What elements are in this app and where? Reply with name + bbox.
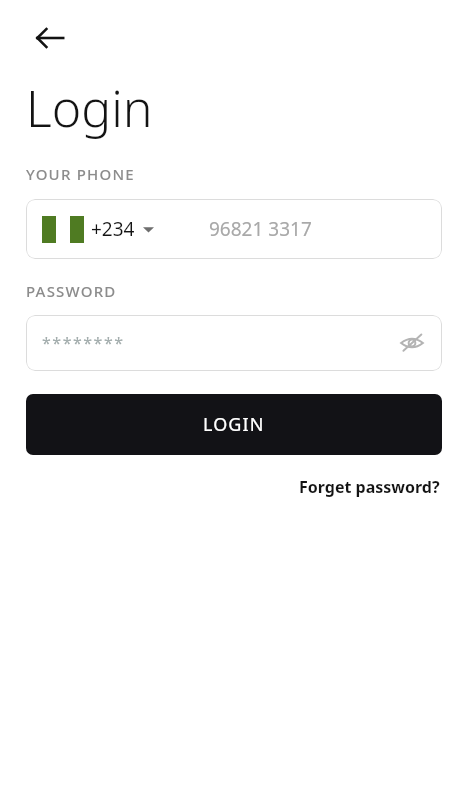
- staticText: Login: [26, 74, 153, 142]
- staticText: ********: [42, 332, 125, 354]
- button[interactable]: LOGIN: [26, 394, 442, 455]
- staticText: YOUR PHONE: [26, 164, 135, 184]
- button[interactable]: Show password: [394, 325, 430, 361]
- button[interactable]: Select country code: [26, 199, 209, 259]
- staticText: +234: [91, 216, 135, 242]
- staticText: LOGIN: [203, 412, 265, 437]
- staticText: 96821 3317: [209, 216, 312, 242]
- button[interactable]: Back: [26, 14, 74, 62]
- staticText: PASSWORD: [26, 281, 117, 301]
- button[interactable]: ********: [26, 315, 442, 371]
- button[interactable]: 96821 3317: [209, 199, 442, 259]
- staticText: Forget password?: [299, 476, 440, 498]
- button[interactable]: Forget password?: [297, 474, 442, 500]
